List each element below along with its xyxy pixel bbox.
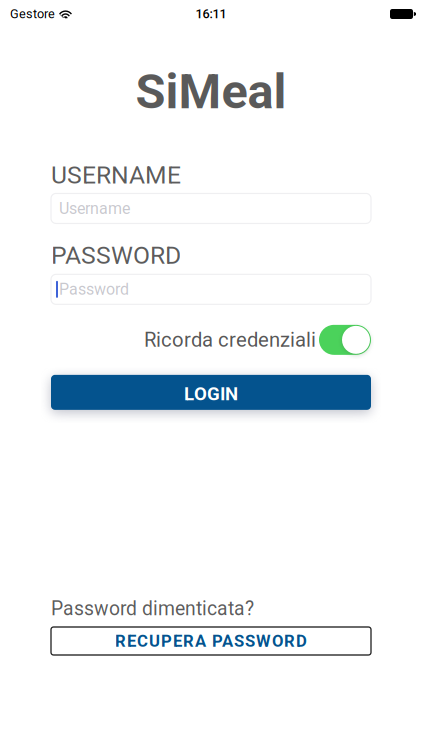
button[interactable]: LOGIN: [51, 375, 371, 410]
staticText: Password dimenticata?: [51, 597, 254, 620]
staticText: PASSWORD: [51, 241, 181, 270]
staticText: LOGIN: [184, 383, 238, 405]
staticText: Username: [59, 199, 130, 218]
button[interactable]: RECUPERA PASSWORD: [51, 627, 371, 655]
staticText: USERNAME: [51, 160, 181, 189]
staticText: Gestore: [10, 7, 55, 21]
staticText: Ricorda credenziali: [144, 328, 316, 352]
staticText: 16:11: [195, 7, 226, 21]
staticText: SiMeal: [135, 63, 286, 120]
button[interactable]: Ricorda credenziali: [319, 325, 371, 355]
staticText: Password: [59, 280, 129, 299]
staticText: RECUPERA PASSWORD: [115, 631, 307, 651]
